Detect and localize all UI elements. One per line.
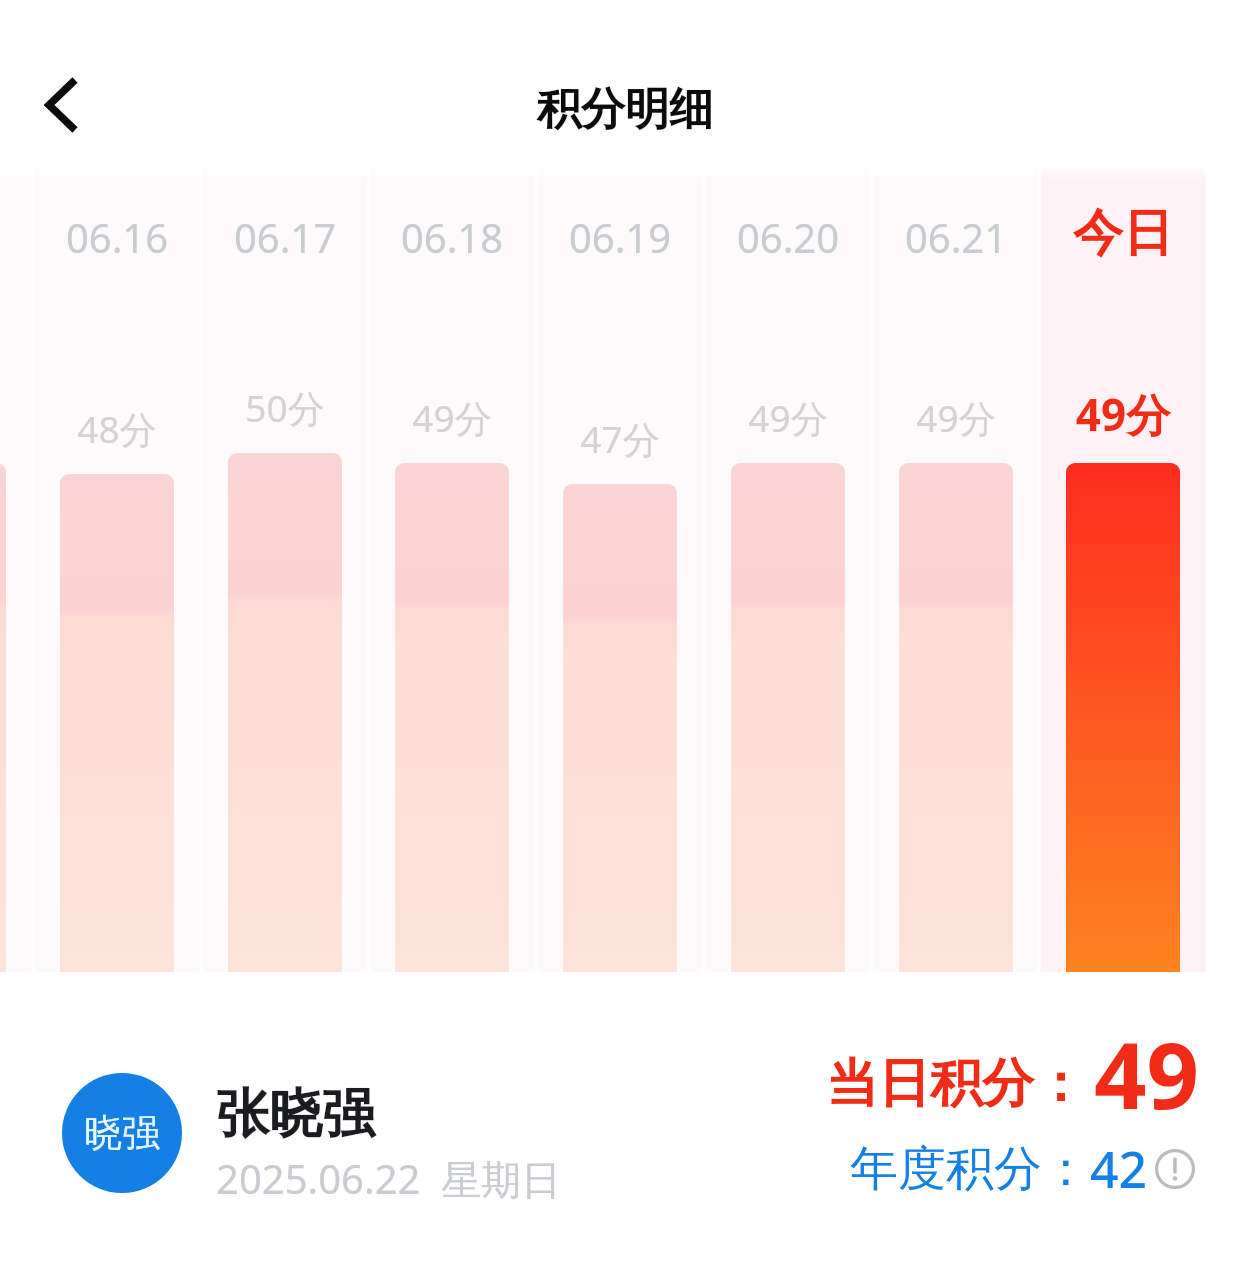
button[interactable]: 06.15 49分 xyxy=(0,165,32,972)
staticText: 47分 xyxy=(530,413,710,464)
staticText: 49分 xyxy=(1033,384,1213,444)
staticText: 06.17 xyxy=(195,210,375,264)
staticText: 48分 xyxy=(27,403,207,454)
staticText: 50分 xyxy=(195,382,375,433)
staticText: 06.20 xyxy=(698,210,878,264)
staticText: 42 xyxy=(1090,1135,1148,1203)
button[interactable]: 今日 49分 xyxy=(1041,165,1206,972)
button[interactable]: 晓强 xyxy=(46,1058,606,1208)
staticText: 06.21 xyxy=(866,210,1046,264)
staticText: 当日积分： xyxy=(826,1051,1086,1117)
staticText: 49 xyxy=(1094,1011,1200,1136)
staticText: 积分明细 xyxy=(537,82,713,137)
staticText: 49分 xyxy=(866,392,1046,443)
button[interactable]: 06.21 49分 xyxy=(873,165,1038,972)
button[interactable]: 06.19 47分 xyxy=(538,165,703,972)
button[interactable]: 06.18 49分 xyxy=(370,165,535,972)
button[interactable]: 06.20 49分 xyxy=(705,165,870,972)
button[interactable]: 06.17 50分 xyxy=(202,165,367,972)
staticText: 年度积分： xyxy=(850,1139,1090,1199)
staticText: 06.16 xyxy=(27,210,207,264)
staticText: 49分 xyxy=(362,392,542,443)
staticText: 49分 xyxy=(698,392,878,443)
staticText: 06.18 xyxy=(362,210,542,264)
button[interactable]: Yearly points info xyxy=(1153,1147,1197,1191)
staticText: 2025.06.22 星期日 xyxy=(216,1151,562,1206)
button[interactable]: Back xyxy=(16,56,112,152)
button[interactable]: 06.16 48分 xyxy=(35,165,200,972)
staticText: 晓强 xyxy=(84,1109,160,1157)
staticText: 今日 xyxy=(1033,202,1213,265)
staticText: 张晓强 xyxy=(216,1081,375,1148)
staticText: 06.19 xyxy=(530,210,710,264)
